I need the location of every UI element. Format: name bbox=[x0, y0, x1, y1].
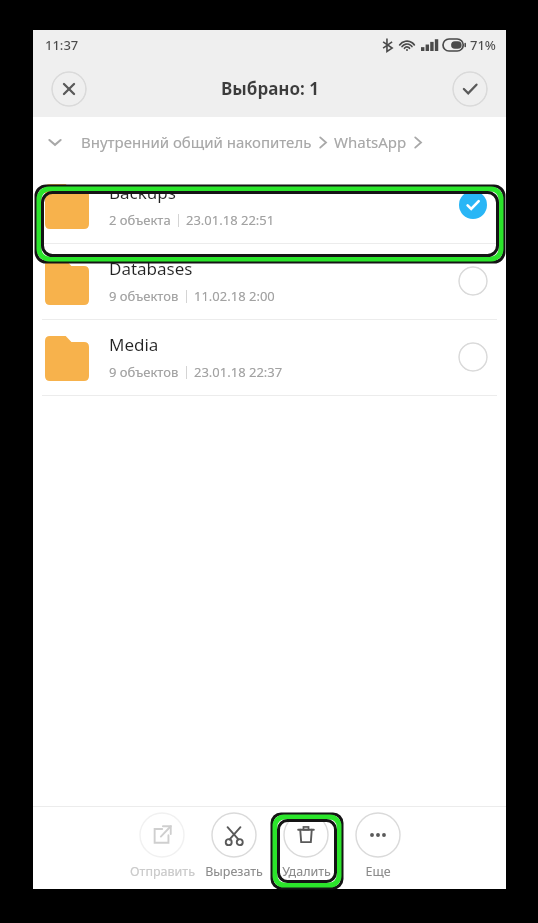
button[interactable]: Не выбрано bbox=[458, 266, 488, 296]
staticText: Отправить bbox=[130, 863, 195, 880]
button[interactable]: Отправить bbox=[128, 812, 196, 880]
staticText: 9 объектов bbox=[109, 363, 179, 381]
staticText: Вырезать bbox=[205, 863, 263, 880]
staticText: 9 объектов bbox=[109, 287, 179, 305]
button[interactable]: Еще bbox=[344, 812, 412, 880]
staticText: 11.02.18 2:00 bbox=[194, 287, 275, 305]
staticText: 11:37 bbox=[45, 36, 79, 54]
button[interactable]: Databases bbox=[33, 243, 506, 319]
staticText: Backups bbox=[109, 181, 176, 204]
staticText: 23.01.18 22:51 bbox=[186, 211, 275, 229]
staticText: Databases bbox=[109, 257, 193, 280]
button[interactable]: Подтвердить bbox=[452, 71, 488, 107]
staticText: 23.01.18 22:37 bbox=[194, 363, 283, 381]
button[interactable]: Отменить выбор bbox=[51, 71, 87, 107]
button[interactable]: Удалить bbox=[272, 812, 340, 880]
button[interactable]: Выбрано bbox=[458, 190, 488, 220]
staticText: Выбрано: 1 bbox=[221, 77, 319, 100]
staticText: Внутренний общий накопитель bbox=[81, 132, 312, 152]
staticText: Удалить bbox=[282, 863, 331, 880]
button[interactable]: Не выбрано bbox=[458, 342, 488, 372]
staticText: WhatsApp bbox=[334, 132, 407, 152]
staticText: 71% bbox=[470, 36, 496, 54]
staticText: 2 объекта bbox=[109, 211, 171, 229]
button[interactable]: Backups bbox=[33, 167, 506, 243]
staticText: Еще bbox=[365, 863, 391, 880]
button[interactable]: Media bbox=[33, 319, 506, 395]
button[interactable]: Вырезать bbox=[200, 812, 268, 880]
button[interactable]: Внутренний общий накопитель bbox=[33, 117, 506, 167]
staticText: Media bbox=[109, 333, 159, 356]
